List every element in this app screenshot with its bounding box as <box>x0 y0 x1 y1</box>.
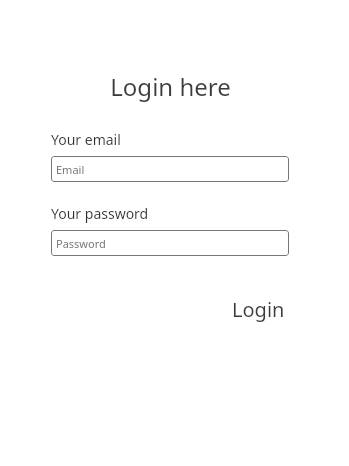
button[interactable]: Password <box>51 230 289 256</box>
staticText: Login <box>232 296 285 323</box>
staticText: Login here <box>110 70 231 103</box>
button[interactable]: Login <box>228 294 289 325</box>
staticText: Your password <box>51 204 149 223</box>
staticText: Your email <box>51 130 121 149</box>
staticText: Password <box>56 236 106 251</box>
staticText: Email <box>56 162 85 177</box>
button[interactable]: Email <box>51 156 289 182</box>
